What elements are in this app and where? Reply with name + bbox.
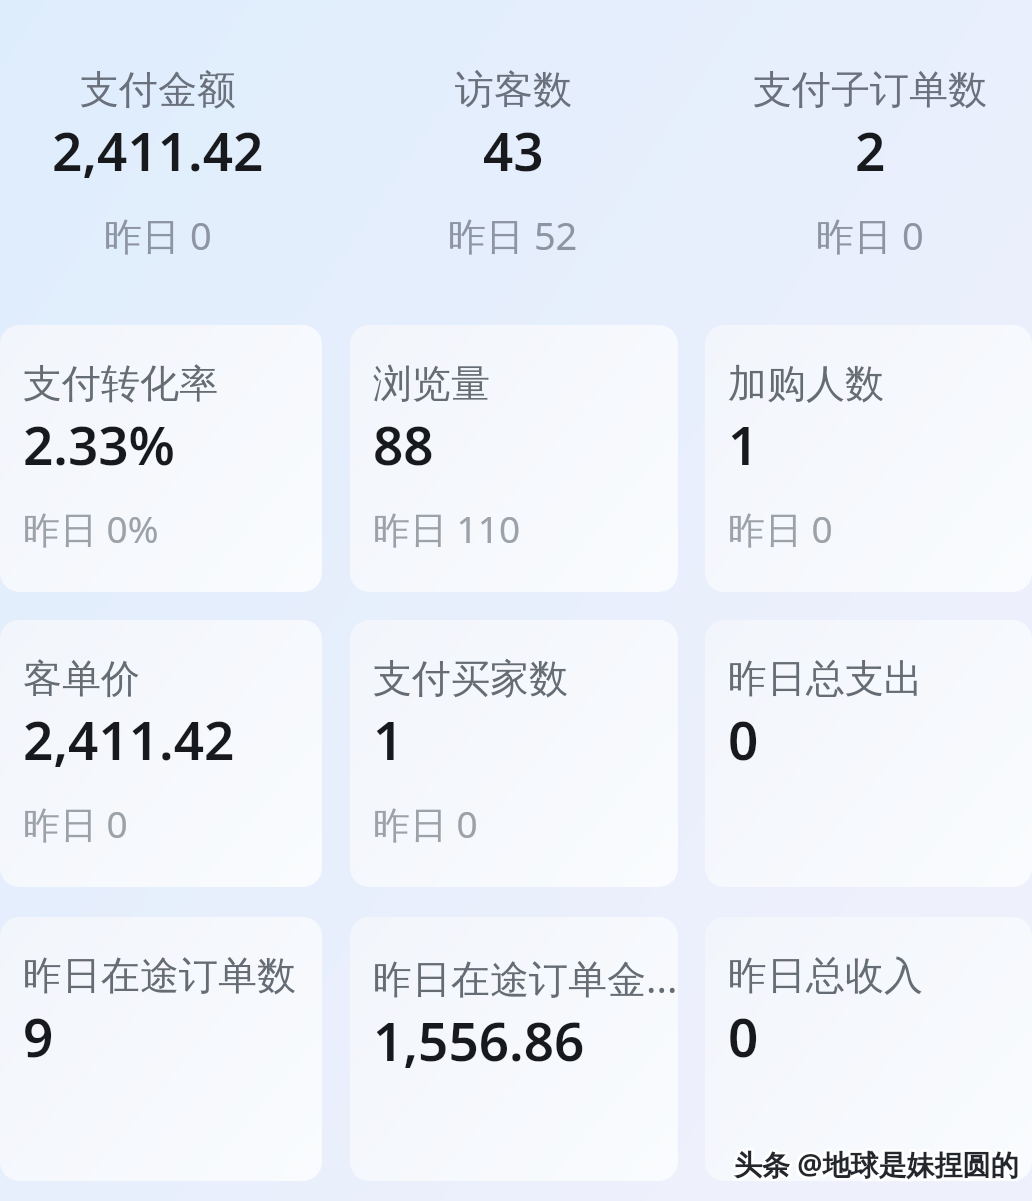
staticText: 9 (23, 1000, 54, 1072)
staticText: 昨日 110 (373, 503, 521, 554)
staticText: 昨日 52 (448, 209, 578, 261)
staticText: 头条 @地球是妹捏圆的 (734, 1146, 1019, 1184)
staticText: 2 (855, 114, 886, 186)
staticText: 昨日 0% (23, 503, 159, 554)
staticText: 头条 @地球是妹捏圆的 (732, 1144, 1017, 1182)
button[interactable]: 访客数 (333, 65, 693, 261)
button[interactable]: 客单价 (0, 620, 322, 887)
staticText: 头条 @地球是妹捏圆的 (733, 1147, 1018, 1185)
staticText: 支付买家数 (373, 654, 568, 703)
staticText: 昨日总收入 (728, 951, 923, 1000)
button[interactable]: 加购人数 (705, 325, 1032, 592)
staticText: 0 (728, 1000, 759, 1072)
staticText: 头条 @地球是妹捏圆的 (735, 1146, 1020, 1184)
staticText: 客单价 (23, 654, 140, 703)
staticText: 头条 @地球是妹捏圆的 (733, 1146, 1018, 1184)
button[interactable]: 支付金额 (0, 65, 338, 261)
staticText: 头条 @地球是妹捏圆的 (732, 1143, 1017, 1181)
staticText: 头条 @地球是妹捏圆的 (735, 1145, 1020, 1183)
staticText: 头条 @地球是妹捏圆的 (734, 1145, 1019, 1183)
staticText: 昨日 0 (816, 209, 924, 261)
staticText: 0 (728, 703, 759, 775)
staticText: 头条 @地球是妹捏圆的 (736, 1145, 1021, 1183)
staticText: 1 (373, 703, 404, 775)
button[interactable]: 昨日在途订单金... (350, 917, 678, 1181)
staticText: 支付金额 (80, 65, 236, 114)
staticText: 昨日 0 (728, 503, 833, 554)
button[interactable]: 支付买家数 (350, 620, 678, 887)
staticText: 支付转化率 (23, 359, 218, 408)
staticText: 昨日 0 (23, 798, 128, 849)
staticText: 头条 @地球是妹捏圆的 (733, 1145, 1018, 1183)
staticText: 头条 @地球是妹捏圆的 (734, 1143, 1019, 1181)
staticText: 1 (728, 408, 759, 480)
staticText: 支付子订单数 (753, 65, 987, 114)
staticText: 昨日在途订单数 (23, 951, 296, 1000)
staticText: 浏览量 (373, 359, 490, 408)
staticText: 头条 @地球是妹捏圆的 (733, 1144, 1018, 1182)
staticText: 昨日 0 (104, 209, 212, 261)
staticText: 头条 @地球是妹捏圆的 (736, 1147, 1021, 1185)
staticText: 头条 @地球是妹捏圆的 (736, 1146, 1021, 1184)
staticText: 头条 @地球是妹捏圆的 (732, 1146, 1017, 1184)
staticText: 头条 @地球是妹捏圆的 (736, 1143, 1021, 1181)
staticText: 88 (373, 408, 434, 480)
staticText: 2,411.42 (23, 703, 235, 775)
staticText: 头条 @地球是妹捏圆的 (735, 1147, 1020, 1185)
staticText: 昨日总支出 (728, 654, 923, 703)
button[interactable]: 支付转化率 (0, 325, 322, 592)
staticText: 头条 @地球是妹捏圆的 (736, 1144, 1021, 1182)
button[interactable]: 昨日总支出 (705, 620, 1032, 887)
staticText: 昨日 0 (373, 798, 478, 849)
staticText: 2,411.42 (52, 114, 264, 186)
staticText: 43 (483, 114, 544, 186)
staticText: 2.33% (23, 408, 175, 480)
button[interactable]: 支付子订单数 (690, 65, 1032, 261)
button[interactable]: 浏览量 (350, 325, 678, 592)
button[interactable]: 昨日在途订单数 (0, 917, 322, 1181)
staticText: 头条 @地球是妹捏圆的 (732, 1147, 1017, 1185)
button[interactable]: 昨日总收入 (705, 917, 1032, 1181)
staticText: 头条 @地球是妹捏圆的 (735, 1143, 1020, 1181)
staticText: 访客数 (455, 65, 572, 114)
staticText: 1,556.86 (373, 1004, 585, 1076)
staticText: 加购人数 (728, 359, 884, 408)
staticText: 昨日在途订单金... (373, 951, 666, 1004)
staticText: 头条 @地球是妹捏圆的 (735, 1144, 1020, 1182)
staticText: 头条 @地球是妹捏圆的 (733, 1143, 1018, 1181)
staticText: 头条 @地球是妹捏圆的 (734, 1144, 1019, 1182)
staticText: 头条 @地球是妹捏圆的 (732, 1145, 1017, 1183)
staticText: 头条 @地球是妹捏圆的 (734, 1147, 1019, 1185)
